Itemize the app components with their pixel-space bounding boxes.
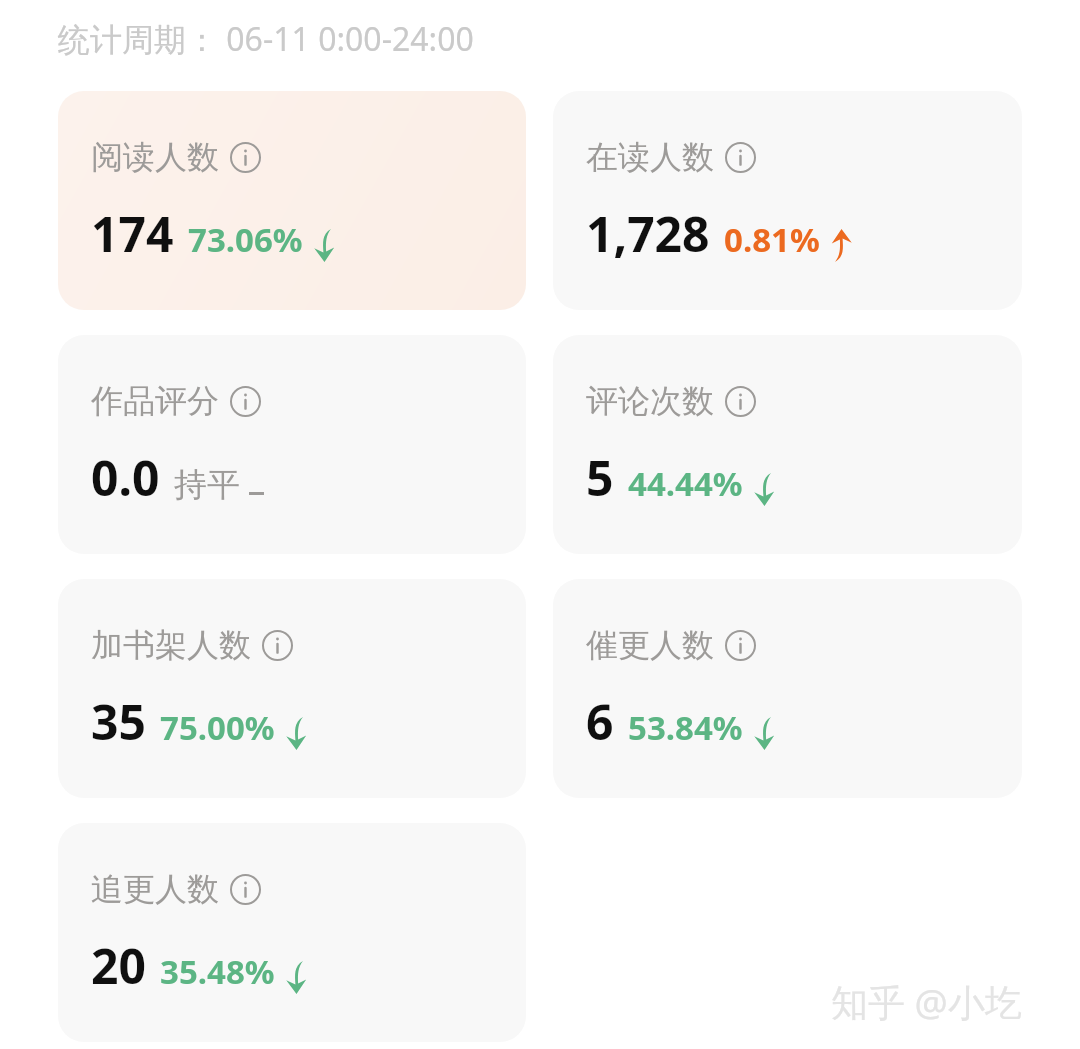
staticText: 20 [91, 933, 146, 998]
button[interactable]: Info [725, 386, 756, 417]
button[interactable]: Info [230, 386, 261, 417]
button[interactable]: 阅读人数 [58, 91, 526, 310]
staticText: 174 [91, 201, 174, 266]
staticText: 加书架人数 [91, 625, 251, 665]
button[interactable]: 加书架人数 [58, 579, 526, 798]
staticText: 作品评分 [91, 381, 219, 421]
staticText: 追更人数 [91, 869, 219, 909]
staticText: 44.44% [628, 461, 743, 506]
staticText: 阅读人数 [91, 137, 219, 177]
button[interactable]: Info [725, 142, 756, 173]
button[interactable]: 评论次数 [553, 335, 1022, 554]
staticText: 73.06% [188, 217, 303, 262]
button[interactable]: Info [725, 630, 756, 661]
button[interactable]: Info [230, 142, 261, 173]
button[interactable]: Info [262, 630, 293, 661]
button[interactable]: Info [230, 874, 261, 905]
staticText: 53.84% [628, 705, 743, 750]
staticText: 知乎 @小圪 [831, 976, 1022, 1027]
staticText: 75.00% [160, 705, 275, 750]
staticText: 5 [586, 445, 614, 510]
staticText: 统计周期： 06-11 0:00-24:00 [58, 17, 474, 61]
staticText: 在读人数 [586, 137, 714, 177]
staticText: 评论次数 [586, 381, 714, 421]
staticText: 35.48% [160, 949, 275, 994]
button[interactable]: 追更人数 [58, 823, 526, 1042]
staticText: 0.81% [724, 217, 820, 262]
staticText: 6 [586, 689, 614, 754]
staticText: 持平 [174, 464, 240, 506]
staticText: 催更人数 [586, 625, 714, 665]
staticText: 0.0 [91, 445, 160, 510]
staticText: 1,728 [586, 201, 710, 266]
staticText: 35 [91, 689, 146, 754]
button[interactable]: 在读人数 [553, 91, 1022, 310]
button[interactable]: 催更人数 [553, 579, 1022, 798]
button[interactable]: 作品评分 [58, 335, 526, 554]
